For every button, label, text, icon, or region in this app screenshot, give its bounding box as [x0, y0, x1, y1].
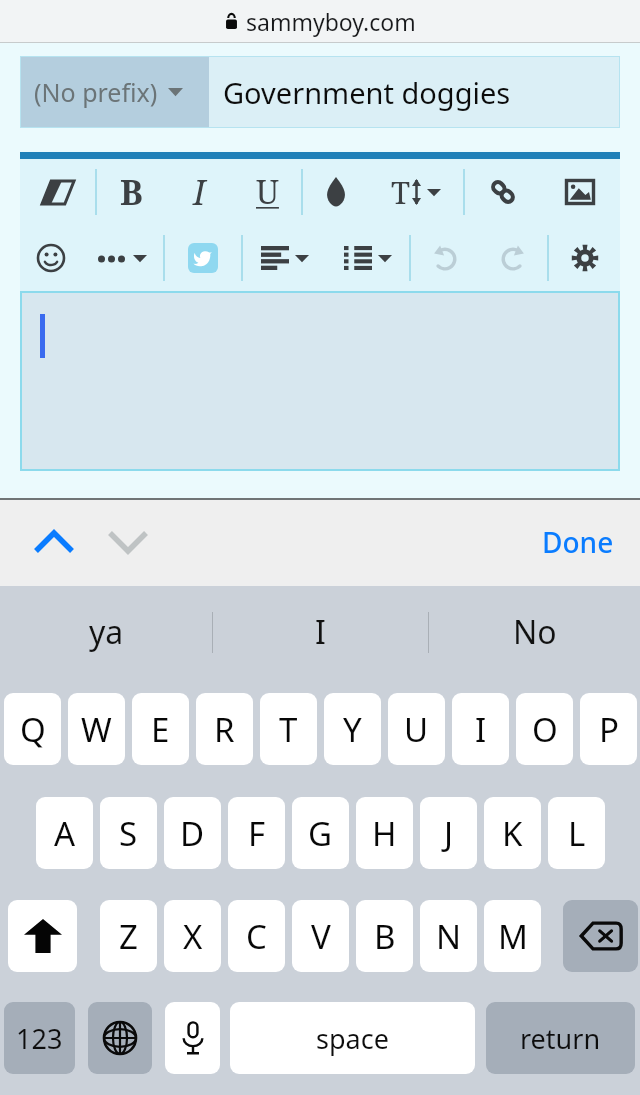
button[interactable]: B — [356, 900, 413, 972]
button[interactable]: F — [228, 797, 285, 869]
button[interactable]: Previous field — [26, 518, 82, 566]
button[interactable]: No — [429, 586, 640, 678]
button[interactable]: H — [356, 797, 413, 869]
button[interactable]: (No prefix) — [21, 57, 209, 127]
button[interactable]: M — [484, 900, 541, 972]
button[interactable]: Done — [536, 513, 620, 571]
staticText: V — [311, 914, 331, 959]
button[interactable]: Z — [100, 900, 157, 972]
button[interactable]: ya — [0, 586, 212, 678]
button[interactable]: T — [260, 693, 317, 765]
button[interactable]: P — [580, 693, 637, 765]
button[interactable]: R — [196, 693, 253, 765]
staticText: E — [151, 707, 170, 752]
staticText: U — [404, 707, 429, 752]
button[interactable]: Smilies — [20, 225, 82, 291]
button[interactable]: Switch keyboard — [88, 1002, 152, 1074]
button[interactable]: Redo — [479, 225, 547, 291]
staticText: C — [246, 914, 267, 959]
button[interactable]: Address bar — [0, 0, 640, 43]
staticText: Q — [20, 707, 46, 752]
button[interactable]: L — [548, 797, 605, 869]
staticText: Done — [542, 523, 614, 561]
staticText: U — [256, 170, 279, 214]
button[interactable]: Insert tweet — [165, 225, 241, 291]
button[interactable]: Italic — [165, 159, 233, 225]
button[interactable]: Insert image — [540, 159, 620, 225]
button[interactable]: K — [484, 797, 541, 869]
staticText: G — [308, 811, 333, 856]
staticText: Z — [119, 914, 138, 959]
staticText: O — [532, 707, 558, 752]
staticText: K — [502, 811, 523, 856]
button[interactable]: N — [420, 900, 477, 972]
staticText: T — [279, 707, 298, 752]
button[interactable]: Font size — [368, 159, 463, 225]
button[interactable]: I — [452, 693, 509, 765]
button[interactable]: More options — [82, 225, 163, 291]
staticText: I — [475, 707, 487, 752]
button[interactable]: C — [228, 900, 285, 972]
button[interactable]: Q — [4, 693, 61, 765]
staticText: F — [248, 811, 266, 856]
staticText: return — [520, 1020, 601, 1057]
staticText: X — [183, 914, 203, 959]
button[interactable]: Lists — [326, 225, 409, 291]
button[interactable]: Text alignment — [243, 225, 326, 291]
button[interactable]: Undo — [411, 225, 479, 291]
button[interactable]: Backspace — [563, 900, 638, 972]
staticText: (No prefix) — [34, 75, 158, 109]
button[interactable]: Eraser — [20, 159, 95, 225]
staticText: P — [599, 707, 619, 752]
button[interactable]: Next field — [100, 518, 156, 566]
staticText: L — [568, 811, 586, 856]
button[interactable]: Underline — [233, 159, 301, 225]
button[interactable]: Settings — [549, 225, 620, 291]
staticText: W — [81, 707, 112, 752]
staticText: B — [374, 914, 396, 959]
button[interactable] — [22, 293, 618, 469]
button[interactable]: Shift — [8, 900, 77, 972]
staticText: I — [193, 169, 206, 215]
button[interactable]: V — [292, 900, 349, 972]
button[interactable]: J — [420, 797, 477, 869]
button[interactable]: S — [100, 797, 157, 869]
button[interactable]: Text colour — [303, 159, 368, 225]
staticText: A — [54, 811, 76, 856]
staticText: N — [436, 914, 462, 959]
button[interactable]: E — [132, 693, 189, 765]
staticText: T — [391, 171, 411, 213]
button[interactable]: I — [213, 586, 428, 678]
staticText: S — [119, 811, 138, 856]
staticText: J — [444, 811, 454, 856]
staticText: No — [513, 610, 557, 654]
staticText: B — [120, 169, 143, 215]
button[interactable]: G — [292, 797, 349, 869]
button[interactable]: space — [230, 1002, 475, 1074]
staticText: D — [180, 811, 205, 856]
staticText: Government doggies — [223, 73, 511, 112]
button[interactable]: A — [36, 797, 93, 869]
button[interactable]: X — [164, 900, 221, 972]
button[interactable]: W — [68, 693, 125, 765]
button[interactable]: Government doggies — [209, 57, 619, 127]
staticText: I — [315, 610, 326, 654]
button[interactable]: Bold — [97, 159, 165, 225]
button[interactable]: Numbers — [4, 1002, 75, 1074]
button[interactable]: Y — [324, 693, 381, 765]
staticText: ya — [89, 610, 124, 654]
button[interactable]: O — [516, 693, 573, 765]
staticText: R — [214, 707, 235, 752]
staticText: H — [372, 811, 397, 856]
staticText: space — [316, 1020, 389, 1057]
button[interactable]: Dictate — [165, 1002, 220, 1074]
staticText: 123 — [16, 1020, 63, 1057]
staticText: sammyboy.com — [246, 6, 416, 37]
button[interactable]: U — [388, 693, 445, 765]
button[interactable]: Insert link — [465, 159, 540, 225]
button[interactable]: D — [164, 797, 221, 869]
button[interactable]: return — [486, 1002, 635, 1074]
staticText: M — [498, 914, 528, 959]
staticText: Y — [343, 707, 362, 752]
